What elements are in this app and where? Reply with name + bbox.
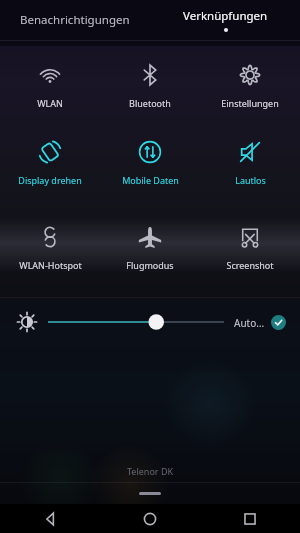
button[interactable]: Recents bbox=[200, 504, 300, 533]
staticText: Telenor DK bbox=[0, 465, 300, 477]
button[interactable]: Brightness bbox=[12, 307, 42, 337]
button[interactable]: Close panel bbox=[0, 488, 300, 498]
button[interactable]: Mobile Daten bbox=[100, 133, 200, 192]
button[interactable]: Screenshot bbox=[200, 218, 300, 277]
button[interactable]: Bluetooth bbox=[100, 56, 200, 115]
button[interactable]: Flugmodus bbox=[100, 218, 200, 277]
staticText: WLAN-Hotspot bbox=[19, 259, 82, 271]
staticText: Lautlos bbox=[235, 174, 266, 186]
staticText: Display drehen bbox=[18, 174, 82, 186]
staticText: Auto… bbox=[234, 316, 265, 330]
button[interactable]: WLAN bbox=[0, 56, 100, 115]
staticText: WLAN bbox=[37, 97, 63, 109]
button[interactable]: Brightness slider bbox=[48, 307, 224, 337]
button[interactable]: Home bbox=[100, 504, 200, 533]
button[interactable]: Einstellungen bbox=[200, 56, 300, 115]
staticText: Benachrichtigungen bbox=[20, 12, 130, 28]
staticText: Flugmodus bbox=[126, 259, 174, 271]
button[interactable]: Back bbox=[0, 504, 100, 533]
staticText: Bluetooth bbox=[129, 97, 171, 109]
staticText: Screenshot bbox=[226, 259, 274, 271]
button[interactable]: Auto… bbox=[232, 315, 288, 330]
button[interactable]: Benachrichtigungen bbox=[0, 0, 150, 40]
staticText: Einstellungen bbox=[221, 97, 279, 109]
button[interactable]: WLAN-Hotspot bbox=[0, 218, 100, 277]
staticText: Mobile Daten bbox=[122, 174, 179, 186]
button[interactable]: Display drehen bbox=[0, 133, 100, 192]
button[interactable]: Verknüpfungen bbox=[150, 0, 300, 40]
button[interactable]: Lautlos bbox=[200, 133, 300, 192]
staticText: Verknüpfungen bbox=[183, 8, 268, 24]
